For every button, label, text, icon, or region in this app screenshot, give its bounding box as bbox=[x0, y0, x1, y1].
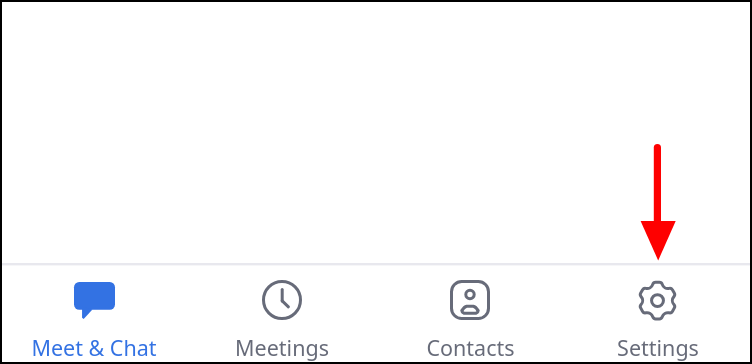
button[interactable]: Settings bbox=[564, 267, 752, 364]
staticText: Meetings bbox=[235, 333, 329, 362]
staticText: Meet & Chat bbox=[31, 333, 157, 362]
staticText: Contacts bbox=[426, 333, 515, 362]
button[interactable]: Contacts bbox=[376, 267, 564, 364]
other: Contacts bbox=[450, 280, 490, 320]
other: Settings bbox=[638, 280, 678, 320]
staticText: Settings bbox=[617, 333, 699, 362]
other: Meetings bbox=[262, 280, 302, 320]
other: Meet and Chat bbox=[74, 282, 115, 319]
button[interactable]: Meet and Chat bbox=[0, 267, 188, 364]
button[interactable]: Meetings bbox=[188, 267, 376, 364]
